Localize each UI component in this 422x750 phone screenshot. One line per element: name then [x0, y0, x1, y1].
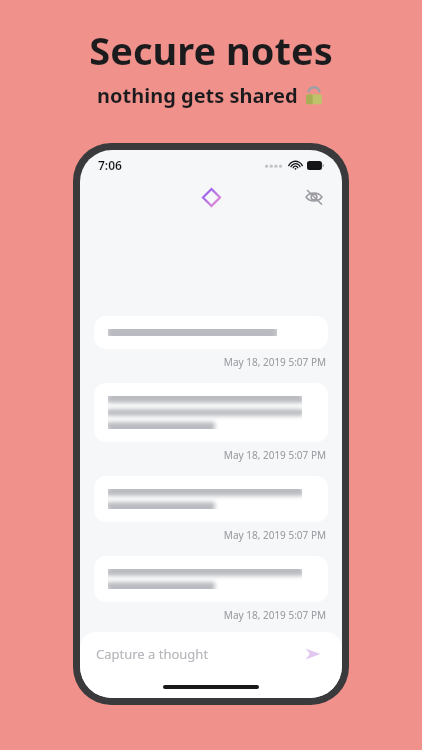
button[interactable] [94, 316, 328, 349]
staticText: 7:06 [98, 157, 122, 173]
staticText: May 18, 2019 5:07 PM [94, 448, 326, 462]
button[interactable]: Send [300, 641, 326, 667]
staticText: Capture a thought [96, 645, 209, 663]
button[interactable] [94, 383, 328, 442]
button[interactable]: Capture a thought [80, 632, 342, 676]
staticText: May 18, 2019 5:07 PM [94, 355, 326, 369]
button[interactable] [94, 476, 328, 522]
button[interactable]: App logo [196, 182, 226, 212]
staticText: Secure notes [89, 24, 333, 76]
staticText: May 18, 2019 5:07 PM [94, 528, 326, 542]
button[interactable]: Hide notes [300, 183, 328, 211]
staticText: nothing gets shared [97, 82, 303, 109]
button[interactable] [94, 556, 328, 602]
staticText: May 18, 2019 5:07 PM [94, 608, 326, 622]
